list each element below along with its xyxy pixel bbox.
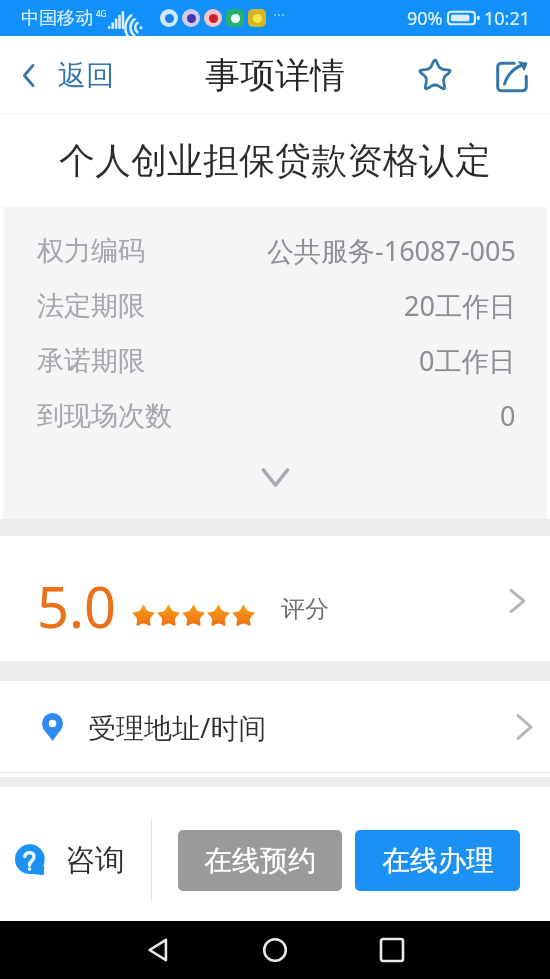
staticText: 个人创业担保贷款资格认定 (59, 138, 491, 183)
staticText: 公共服务-16087-005 (267, 232, 516, 269)
staticText: 法定期限 (37, 289, 145, 323)
button[interactable]: 咨询 (14, 787, 153, 921)
staticText: 到现场次数 (37, 399, 172, 433)
staticText: 在线办理 (382, 843, 494, 878)
button[interactable]: 返回 (0, 36, 126, 114)
button[interactable]: 5.0 (0, 536, 550, 661)
staticText: 承诺期限 (37, 344, 145, 378)
staticText: 4G (96, 8, 107, 19)
staticText: ··· (273, 4, 286, 24)
staticText: 10:21 (484, 6, 531, 31)
staticText: 中国移动 (21, 7, 93, 30)
button[interactable]: Expand (3, 443, 547, 519)
button[interactable]: Back (132, 924, 184, 976)
staticText: 5.0 (37, 568, 117, 644)
button[interactable]: Share (473, 36, 550, 114)
button[interactable]: 受理地址/时间 (0, 681, 550, 772)
staticText: 20工作日 (404, 287, 516, 324)
staticText: 事项详情 (205, 53, 345, 97)
staticText: 在线预约 (204, 843, 316, 878)
staticText: 受理地址/时间 (88, 708, 267, 746)
staticText: 0 (500, 397, 516, 434)
staticText: 权力编码 (37, 234, 145, 268)
button[interactable]: Favorite (396, 36, 473, 114)
staticText: 咨询 (65, 841, 125, 879)
button[interactable]: 在线预约 (178, 830, 342, 891)
button[interactable]: Home (249, 924, 301, 976)
staticText: 返回 (58, 58, 114, 93)
staticText: 评分 (281, 594, 329, 624)
staticText: 90% (407, 6, 443, 31)
button[interactable]: Recents (366, 924, 418, 976)
staticText: 0工作日 (419, 342, 516, 379)
button[interactable]: 在线办理 (355, 830, 520, 891)
